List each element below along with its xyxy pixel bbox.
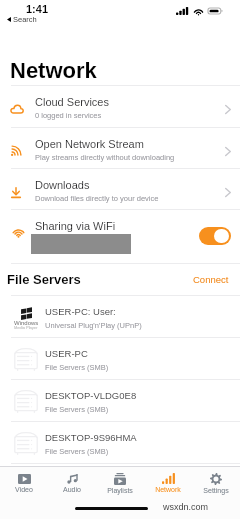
staticText: Settings	[203, 487, 229, 495]
staticText: Universal Plug'n'Play (UPnP)	[45, 321, 142, 329]
button[interactable]: Sharing via WiFi	[0, 210, 240, 263]
staticText: DESKTOP-9S96HMA	[45, 432, 137, 443]
staticText: File Servers (SMB)	[45, 363, 109, 371]
staticText: Network	[10, 58, 97, 83]
button[interactable]: DESKTOP-9S96HMA	[0, 422, 240, 463]
staticText: wsxdn.com	[163, 502, 209, 512]
staticText: Cloud Services	[35, 96, 109, 108]
button[interactable]: Downloads	[0, 169, 240, 210]
staticText: File Servers (SMB)	[45, 405, 109, 413]
staticText: File Servers	[7, 272, 81, 287]
staticText: Sharing via WiFi	[35, 220, 116, 232]
staticText: USER-PC	[45, 348, 88, 359]
button[interactable]: Audio	[48, 473, 96, 494]
staticText: File Servers (SMB)	[45, 447, 109, 455]
button[interactable]: USER-PC	[0, 338, 240, 379]
button[interactable]: Settings	[192, 473, 240, 495]
staticText: Play streams directly without downloadin…	[35, 153, 175, 161]
staticText: Search	[13, 15, 37, 23]
staticText: Download files directly to your device	[35, 194, 159, 202]
button[interactable]: Windows	[0, 296, 240, 337]
button[interactable]: Cloud Services	[0, 86, 240, 127]
staticText: 1:41	[26, 3, 49, 15]
staticText: Audio	[63, 486, 81, 494]
staticText: Video	[15, 486, 33, 494]
button[interactable]: DESKTOP-VLDG0E8	[0, 380, 240, 421]
staticText: Windows	[14, 320, 39, 327]
staticText: DESKTOP-VLDG0E8	[45, 390, 137, 401]
staticText: USER-PC: User:	[45, 306, 116, 317]
button[interactable]: Video	[0, 474, 48, 494]
staticText: Downloads	[35, 179, 90, 191]
staticText: Connect	[193, 274, 229, 285]
button[interactable]: Open Network Stream	[0, 128, 240, 169]
button[interactable]: Playlists	[96, 473, 144, 495]
button[interactable]: Connect	[193, 274, 229, 285]
staticText: 0 logged in services	[35, 111, 102, 119]
button[interactable]: Toggle WiFi sharing	[199, 227, 231, 245]
staticText: Network	[155, 486, 181, 494]
staticText: Open Network Stream	[35, 138, 144, 150]
button[interactable]: Network	[144, 473, 192, 494]
staticText: Media Player	[14, 325, 38, 329]
staticText: Playlists	[107, 487, 133, 495]
